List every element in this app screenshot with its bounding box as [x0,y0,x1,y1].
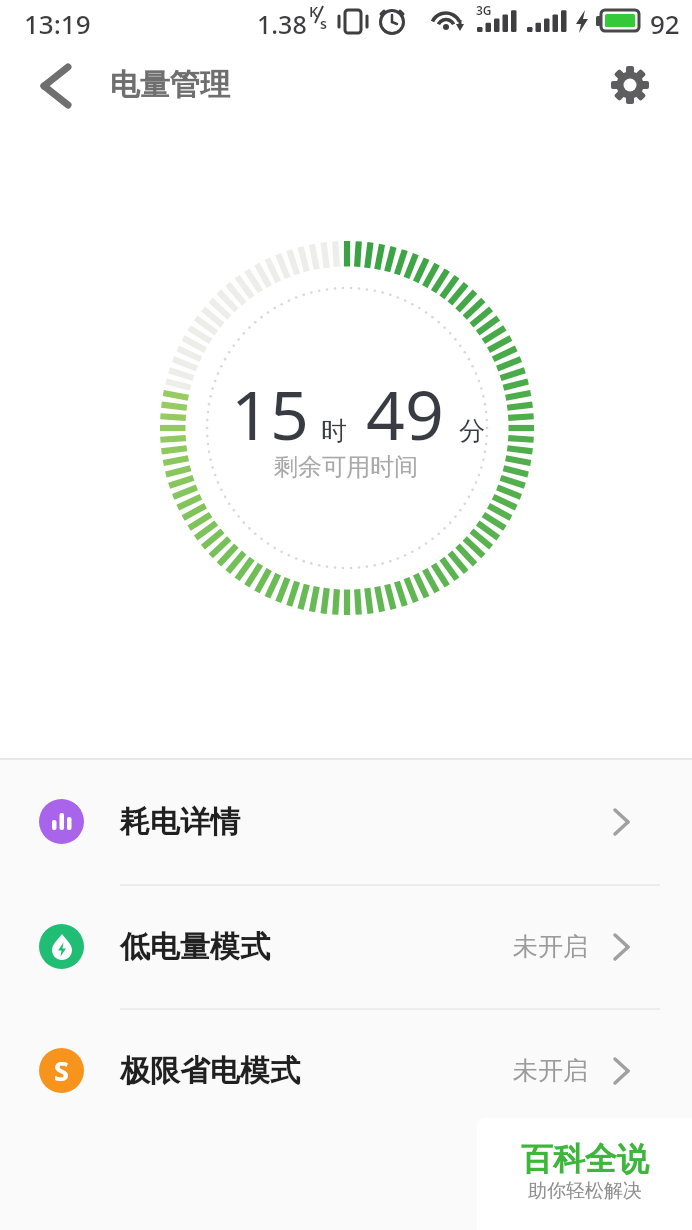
staticText: 49 [366,367,444,460]
staticText: 1.38 [257,7,307,41]
staticText: 电量管理 [110,66,230,104]
button[interactable]: 百科全说 [477,1118,692,1230]
staticText: 15 [231,367,309,460]
staticText: 分 [459,415,485,448]
staticText: 3G [476,2,492,18]
staticText: K [309,2,319,21]
staticText: 时 [321,415,347,448]
staticText: 剩余可用时间 [274,452,418,482]
button[interactable] [598,53,662,117]
button[interactable] [28,54,84,118]
staticText: S [54,1052,69,1089]
staticText: 低电量模式 [120,928,270,966]
staticText: 极限省电模式 [120,1052,300,1090]
staticText: 耗电详情 [120,803,240,841]
button[interactable]: S [0,1008,692,1133]
button[interactable]: 耗电详情 [0,759,692,884]
staticText: 未开启 [513,1055,588,1086]
staticText: 92 [650,6,680,41]
button[interactable]: 低电量模式 [0,884,692,1009]
staticText: 未开启 [513,931,588,962]
staticText: 13:19 [24,6,91,41]
staticText: 助你轻松解决 [528,1179,642,1203]
staticText: 百科全说 [521,1139,649,1179]
staticText: s [320,14,327,33]
